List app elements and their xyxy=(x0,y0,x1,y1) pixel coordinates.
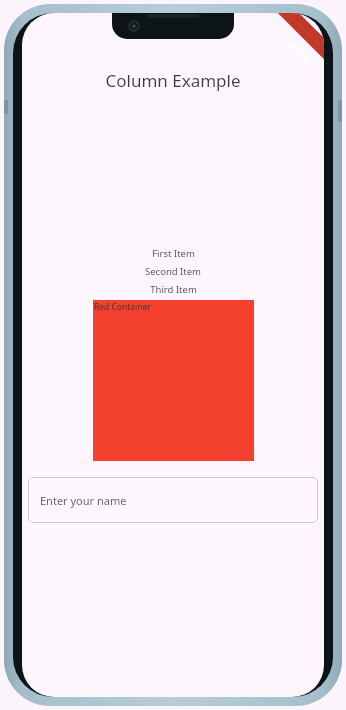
staticText: Enter your name xyxy=(40,493,127,508)
button[interactable]: Enter your name xyxy=(28,477,318,523)
staticText: First Item xyxy=(152,247,195,260)
button[interactable]: Red Container xyxy=(93,300,254,461)
staticText: Red Container xyxy=(94,301,151,313)
staticText: Third Item xyxy=(150,283,197,296)
staticText: Column Example xyxy=(105,69,241,92)
other: Debug banner xyxy=(258,13,324,79)
staticText: Second Item xyxy=(145,265,201,278)
